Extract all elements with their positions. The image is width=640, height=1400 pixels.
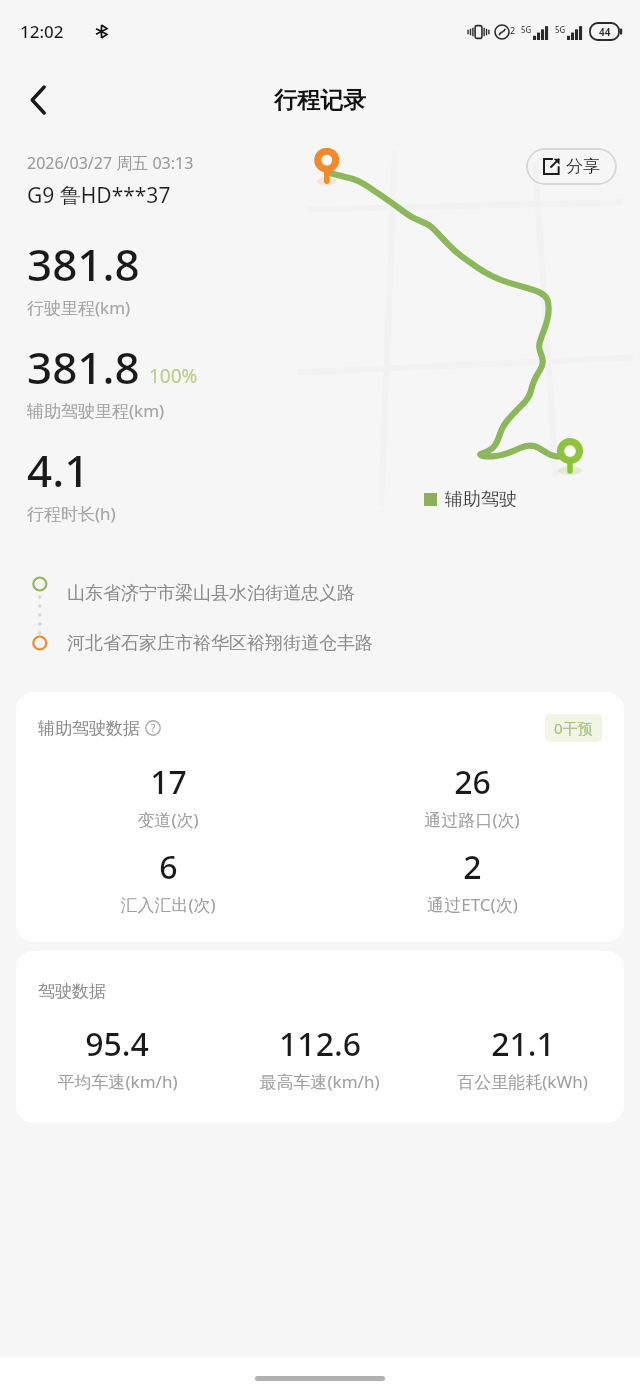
staticText: 最高车速(km/h) — [259, 1070, 380, 1093]
staticText: 辅助驾驶数据 — [38, 718, 140, 739]
button[interactable]: 分享 — [526, 148, 617, 185]
staticText: 通过ETC(次) — [427, 893, 518, 916]
staticText: 100% — [149, 363, 198, 389]
staticText: 381.8 — [27, 234, 140, 294]
staticText: 17 — [150, 760, 187, 804]
staticText: 河北省石家庄市裕华区裕翔街道仓丰路 — [67, 632, 373, 655]
staticText: 行驶里程(km) — [27, 296, 131, 319]
staticText: 2 — [463, 845, 482, 889]
staticText: 95.4 — [85, 1022, 149, 1066]
staticText: 2 — [510, 24, 516, 36]
staticText: 381.8 — [27, 337, 140, 397]
staticText: G9 鲁HD***37 — [27, 181, 171, 210]
staticText: 2026/03/27 周五 03:13 — [27, 152, 194, 174]
staticText: 4.1 — [27, 440, 90, 500]
staticText: 百公里能耗(kWh) — [457, 1070, 588, 1093]
staticText: 平均车速(km/h) — [57, 1070, 178, 1093]
staticText: 6 — [159, 845, 178, 889]
staticText: ? — [151, 721, 156, 735]
staticText: 行程记录 — [274, 86, 366, 115]
staticText: 12:02 — [20, 20, 64, 43]
staticText: 驾驶数据 — [38, 981, 106, 1002]
staticText: 辅助驾驶里程(km) — [27, 399, 165, 422]
staticText: 通过路口(次) — [424, 808, 520, 831]
button[interactable]: Info — [145, 720, 161, 736]
staticText: 26 — [454, 760, 491, 804]
staticText: 山东省济宁市梁山县水泊街道忠义路 — [67, 582, 355, 605]
button[interactable]: Back — [10, 72, 66, 128]
staticText: 5G — [521, 24, 532, 35]
staticText: 分享 — [566, 156, 600, 177]
staticText: 44 — [599, 25, 611, 39]
staticText: 汇入汇出(次) — [120, 893, 216, 916]
staticText: 行程时长(h) — [27, 502, 116, 525]
staticText: 112.6 — [279, 1022, 361, 1066]
staticText: 5G — [555, 24, 566, 35]
staticText: 辅助驾驶 — [445, 488, 517, 511]
staticText: 0干预 — [554, 718, 593, 738]
staticText: 变道(次) — [137, 808, 199, 831]
staticText: 21.1 — [491, 1022, 555, 1066]
